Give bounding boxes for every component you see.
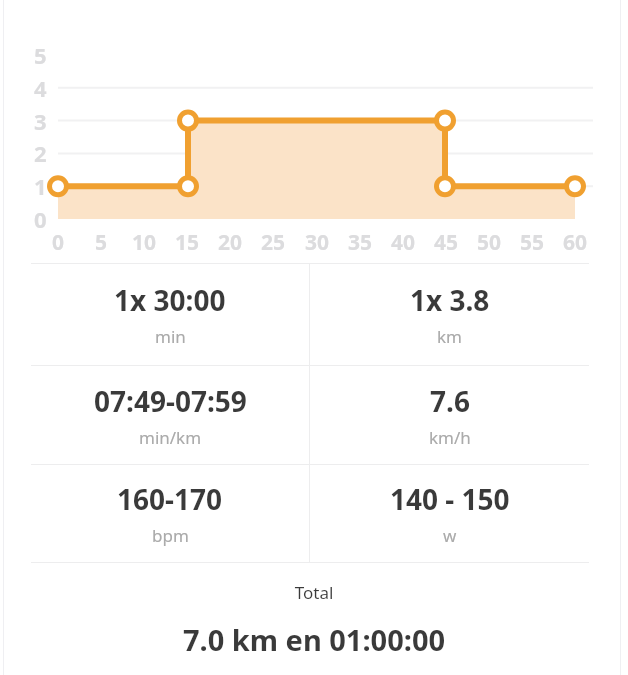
staticText: 40 bbox=[391, 228, 416, 256]
button[interactable]: 160-170 bbox=[31, 465, 309, 562]
staticText: 2 bbox=[34, 138, 47, 168]
staticText: 5 bbox=[95, 228, 108, 256]
button[interactable]: 7.6 bbox=[310, 366, 589, 464]
staticText: 45 bbox=[434, 228, 459, 256]
staticText: 15 bbox=[175, 228, 200, 256]
staticText: 35 bbox=[348, 228, 373, 256]
staticText: 5 bbox=[34, 40, 47, 70]
staticText: 1 bbox=[34, 171, 47, 201]
staticText: 50 bbox=[477, 228, 502, 256]
staticText: 25 bbox=[261, 228, 286, 256]
staticText: 160-170 bbox=[117, 480, 223, 518]
button[interactable]: 07:49-07:59 bbox=[31, 366, 309, 464]
staticText: 30 bbox=[305, 228, 330, 256]
staticText: 140 - 150 bbox=[390, 480, 510, 518]
staticText: 07:49-07:59 bbox=[94, 382, 247, 420]
staticText: 60 bbox=[563, 228, 588, 256]
staticText: 3 bbox=[34, 106, 47, 136]
staticText: min bbox=[155, 325, 186, 348]
staticText: km/h bbox=[429, 426, 471, 449]
button[interactable]: 140 - 150 bbox=[310, 465, 589, 562]
staticText: 7.6 bbox=[430, 382, 470, 420]
staticText: w bbox=[443, 524, 457, 547]
staticText: km bbox=[437, 325, 462, 348]
staticText: bpm bbox=[152, 524, 189, 547]
staticText: 0 bbox=[52, 228, 65, 256]
staticText: Total bbox=[0, 581, 628, 604]
button[interactable]: 1x 30:00 bbox=[31, 264, 309, 365]
staticText: 20 bbox=[218, 228, 243, 256]
staticText: 1x 3.8 bbox=[410, 281, 490, 319]
staticText: 7.0 km en 01:00:00 bbox=[0, 620, 628, 659]
button[interactable]: 1x 3.8 bbox=[310, 264, 589, 365]
staticText: 4 bbox=[34, 73, 47, 103]
staticText: 1x 30:00 bbox=[114, 281, 226, 319]
staticText: 10 bbox=[132, 228, 157, 256]
staticText: 0 bbox=[34, 204, 47, 234]
staticText: 55 bbox=[520, 228, 545, 256]
staticText: min/km bbox=[139, 426, 202, 449]
